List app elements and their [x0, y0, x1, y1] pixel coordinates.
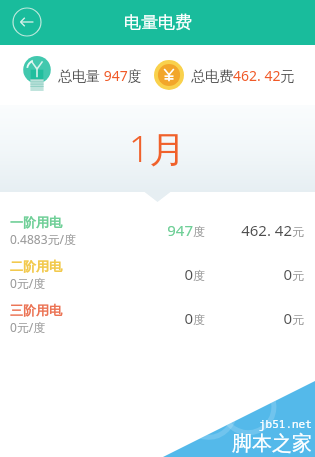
button[interactable]: Back	[12, 7, 42, 37]
staticText: 二阶用电	[10, 258, 62, 274]
staticText: 电量电费	[124, 12, 192, 33]
staticText: 0元	[204, 264, 304, 284]
staticText: 三阶用电	[10, 302, 62, 318]
staticText: jb51.net	[259, 416, 312, 431]
staticText: 0度	[143, 308, 205, 328]
staticText: 脚本之家	[232, 431, 312, 456]
staticText: 0元/度	[10, 275, 46, 291]
button[interactable]: 二阶用电	[0, 252, 315, 296]
staticText: 0元	[204, 308, 304, 328]
button[interactable]: 三阶用电	[0, 296, 315, 340]
staticText: 一阶用电	[10, 214, 62, 230]
staticText: 462. 42元	[204, 220, 304, 240]
staticText: 0.4883元/度	[10, 231, 77, 247]
staticText: 总电费462. 42元	[191, 66, 295, 85]
staticText: 总电量 947度	[58, 66, 142, 85]
staticText: 1月	[129, 124, 186, 173]
staticText: 0元/度	[10, 319, 46, 335]
button[interactable]: 一阶用电	[0, 208, 315, 252]
staticText: 947度	[143, 220, 205, 240]
staticText: 0度	[143, 264, 205, 284]
